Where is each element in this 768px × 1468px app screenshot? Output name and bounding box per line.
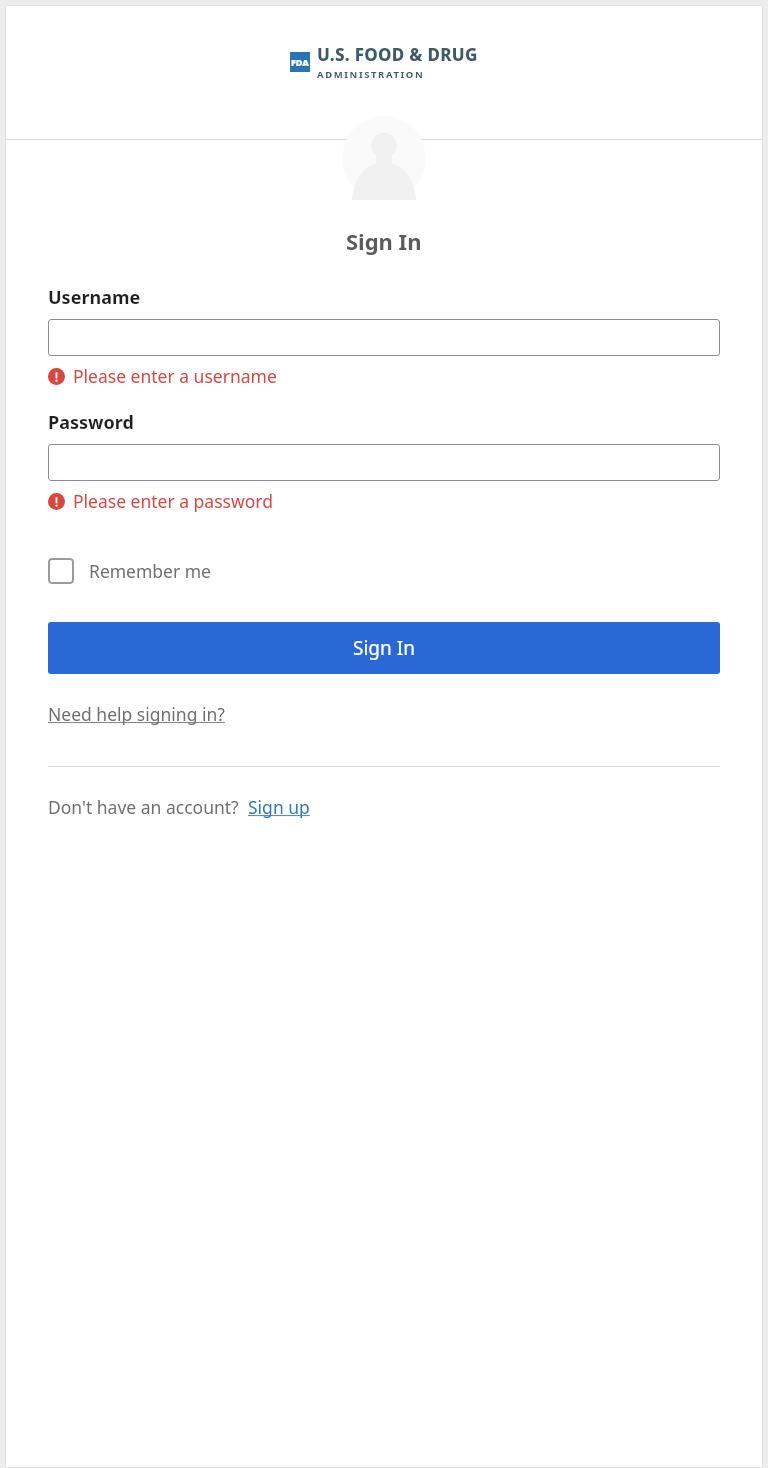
staticText: U.S. FOOD & DRUG	[317, 43, 478, 66]
button[interactable]: Remember me	[48, 556, 211, 586]
staticText: Username	[48, 285, 141, 310]
staticText: Password	[48, 410, 134, 435]
button[interactable]: Username field	[48, 319, 720, 356]
staticText: Don't have an account?	[48, 795, 239, 819]
staticText: Sign In	[353, 635, 415, 661]
staticText: Sign In	[346, 226, 422, 256]
staticText: Remember me	[89, 559, 211, 583]
staticText: Please enter a password	[73, 489, 273, 513]
staticText: Please enter a username	[73, 364, 277, 388]
staticText: FDA	[291, 56, 309, 68]
staticText: Need help signing in?	[48, 702, 225, 726]
button[interactable]: Need help signing in?	[48, 702, 225, 726]
button[interactable]: Sign up	[248, 795, 310, 819]
staticText: ADMINISTRATION	[317, 68, 425, 81]
staticText: Sign up	[248, 795, 310, 819]
button[interactable]: Password field	[48, 444, 720, 481]
button[interactable]: Sign In	[48, 622, 720, 674]
